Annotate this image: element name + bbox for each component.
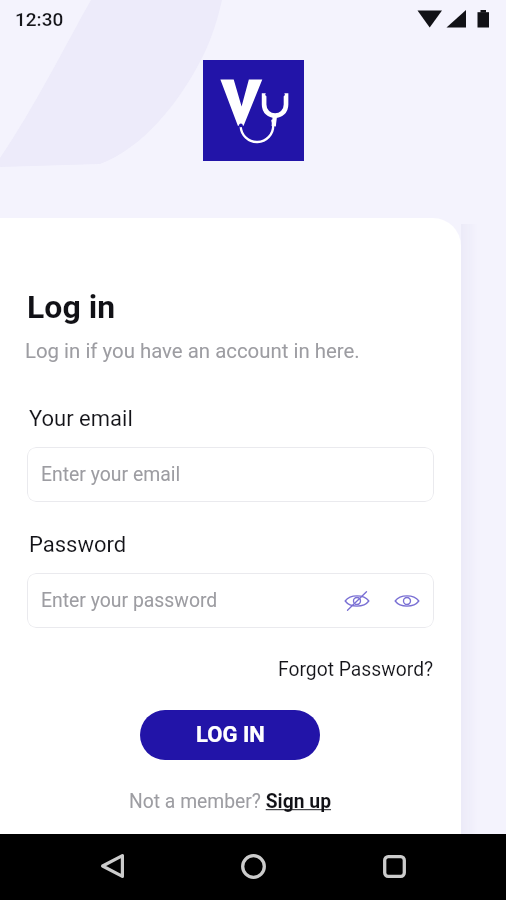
staticText: Your email — [29, 406, 133, 432]
button[interactable]: Recent apps — [372, 844, 416, 888]
staticText: Not a member? Sign up — [129, 790, 332, 813]
staticText: Enter your password — [41, 589, 218, 612]
button[interactable]: Enter your password — [27, 573, 434, 628]
staticText: Log in if you have an account in here. — [25, 339, 360, 363]
button[interactable]: Not a member? Sign up — [119, 782, 342, 821]
button[interactable]: Back — [90, 844, 134, 888]
button[interactable]: Enter your email — [27, 447, 434, 502]
staticText: Enter your email — [41, 463, 181, 486]
button[interactable]: LOG IN — [140, 710, 320, 760]
staticText: LOG IN — [196, 722, 265, 748]
staticText: Forgot Password? — [278, 658, 434, 681]
staticText: 12:30 — [15, 8, 64, 30]
button[interactable]: Hide password — [340, 584, 374, 618]
button[interactable]: Home — [231, 844, 275, 888]
button[interactable]: Show password — [390, 584, 424, 618]
staticText: Log in — [27, 288, 116, 326]
button[interactable]: Forgot Password? — [270, 650, 442, 689]
staticText: Password — [29, 532, 127, 558]
